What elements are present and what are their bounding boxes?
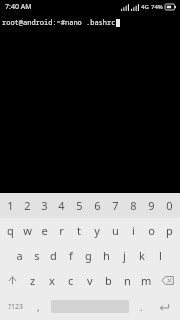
button[interactable]: 7 bbox=[106, 193, 124, 218]
staticText: 74% bbox=[151, 3, 163, 11]
button[interactable]: n bbox=[118, 268, 137, 293]
button[interactable]: 5 bbox=[70, 193, 88, 218]
staticText: r bbox=[59, 223, 64, 238]
button[interactable]: 1 bbox=[2, 193, 19, 218]
staticText: 4G bbox=[141, 3, 149, 11]
button[interactable]: 8 bbox=[124, 193, 142, 218]
staticText: p bbox=[166, 223, 173, 238]
button[interactable]: e bbox=[36, 218, 53, 243]
button[interactable]: 4 bbox=[53, 193, 70, 218]
button[interactable]: 3 bbox=[36, 193, 53, 218]
staticText: x bbox=[49, 273, 55, 288]
button[interactable]: Shift bbox=[2, 268, 23, 293]
staticText: 7:40 AM bbox=[5, 2, 32, 12]
staticText: 6 bbox=[94, 198, 101, 213]
staticText: , bbox=[37, 300, 40, 314]
button[interactable]: a bbox=[11, 243, 28, 268]
staticText: f bbox=[69, 248, 73, 263]
button[interactable]: u bbox=[106, 218, 124, 243]
staticText: n bbox=[124, 273, 131, 288]
staticText: e bbox=[41, 223, 48, 238]
button[interactable]: j bbox=[115, 243, 133, 268]
staticText: ?123 bbox=[8, 302, 24, 312]
button[interactable]: , bbox=[29, 293, 48, 320]
staticText: g bbox=[85, 248, 92, 263]
staticText: t bbox=[77, 223, 81, 238]
staticText: b bbox=[105, 273, 112, 288]
staticText: . bbox=[140, 300, 143, 314]
button[interactable]: g bbox=[79, 243, 97, 268]
staticText: 7 bbox=[112, 198, 119, 213]
staticText: 8 bbox=[130, 198, 137, 213]
button[interactable]: f bbox=[62, 243, 79, 268]
staticText: s bbox=[34, 248, 40, 263]
button[interactable]: Backspace bbox=[156, 268, 178, 293]
staticText: m bbox=[141, 273, 152, 288]
button[interactable]: 9 bbox=[142, 193, 160, 218]
staticText: c bbox=[68, 273, 74, 288]
staticText: l bbox=[159, 248, 162, 263]
staticText: h bbox=[103, 248, 110, 263]
staticText: a bbox=[16, 248, 23, 263]
staticText: 3 bbox=[41, 198, 48, 213]
staticText: o bbox=[148, 223, 155, 238]
button[interactable]: q bbox=[2, 218, 19, 243]
button[interactable]: root@android:~#nano .bashrc bbox=[0, 14, 180, 193]
button[interactable]: m bbox=[137, 268, 156, 293]
staticText: i bbox=[132, 223, 135, 238]
button[interactable]: d bbox=[45, 243, 62, 268]
button[interactable]: p bbox=[160, 218, 178, 243]
button[interactable]: 2 bbox=[19, 193, 36, 218]
button[interactable]: k bbox=[133, 243, 151, 268]
staticText: j bbox=[123, 248, 126, 263]
staticText: 5 bbox=[76, 198, 83, 213]
staticText: 9 bbox=[148, 198, 155, 213]
staticText: 2 bbox=[24, 198, 31, 213]
button[interactable]: h bbox=[97, 243, 115, 268]
button[interactable]: r bbox=[53, 218, 70, 243]
button[interactable]: 6 bbox=[88, 193, 106, 218]
button[interactable]: Enter bbox=[151, 293, 178, 320]
staticText: q bbox=[7, 223, 14, 238]
staticText: u bbox=[112, 223, 119, 238]
button[interactable]: o bbox=[142, 218, 160, 243]
button[interactable]: z bbox=[23, 268, 42, 293]
button[interactable]: c bbox=[61, 268, 80, 293]
staticText: d bbox=[50, 248, 57, 263]
staticText: w bbox=[23, 223, 32, 238]
button[interactable]: y bbox=[88, 218, 106, 243]
button[interactable]: 0 bbox=[160, 193, 178, 218]
button[interactable]: w bbox=[19, 218, 36, 243]
staticText: z bbox=[30, 273, 36, 288]
staticText: k bbox=[139, 248, 145, 263]
staticText: v bbox=[87, 273, 93, 288]
staticText: 4 bbox=[58, 198, 65, 213]
button[interactable]: . bbox=[132, 293, 151, 320]
staticText: 0 bbox=[166, 198, 173, 213]
button[interactable]: b bbox=[99, 268, 118, 293]
button[interactable]: ?123 bbox=[2, 293, 29, 320]
button[interactable]: s bbox=[28, 243, 45, 268]
staticText: y bbox=[94, 223, 100, 238]
staticText: root@android:~#nano .bashrc bbox=[2, 18, 116, 28]
button[interactable]: i bbox=[124, 218, 142, 243]
staticText: 1 bbox=[7, 198, 14, 213]
button[interactable]: t bbox=[70, 218, 88, 243]
button[interactable]: l bbox=[151, 243, 169, 268]
button[interactable]: x bbox=[42, 268, 61, 293]
button[interactable]: v bbox=[80, 268, 99, 293]
